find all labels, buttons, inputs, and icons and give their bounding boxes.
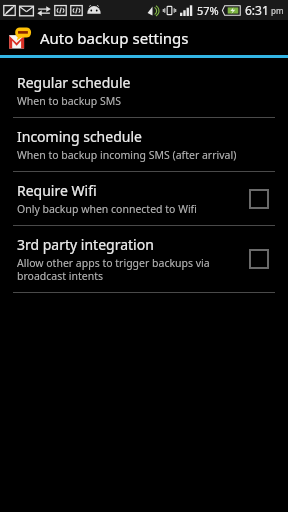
staticText: 6:31	[245, 2, 269, 18]
staticText: 3rd party integration	[17, 235, 154, 254]
button[interactable]: Toggle 3rd party integration	[244, 244, 274, 274]
staticText: Regular schedule	[17, 73, 131, 92]
staticText: When to backup SMS	[17, 94, 121, 108]
button[interactable]: Toggle Require Wifi	[244, 184, 274, 214]
button[interactable]: 3rd party integration	[0, 226, 288, 292]
other: App icon	[8, 26, 32, 50]
button[interactable]: Regular schedule	[0, 64, 288, 117]
staticText: Only backup when connected to Wifi	[17, 202, 197, 216]
staticText: 57%	[197, 3, 219, 18]
button[interactable]: Incoming schedule	[0, 118, 288, 171]
staticText: Require Wifi	[17, 181, 97, 200]
staticText: Allow other apps to trigger backups via …	[17, 256, 236, 283]
staticText: When to backup incoming SMS (after arriv…	[17, 148, 237, 162]
staticText: Incoming schedule	[17, 127, 142, 146]
staticText: Auto backup settings	[40, 28, 189, 48]
button[interactable]: App icon	[0, 20, 288, 55]
button[interactable]: Require Wifi	[0, 172, 288, 225]
staticText: pm	[271, 5, 284, 16]
